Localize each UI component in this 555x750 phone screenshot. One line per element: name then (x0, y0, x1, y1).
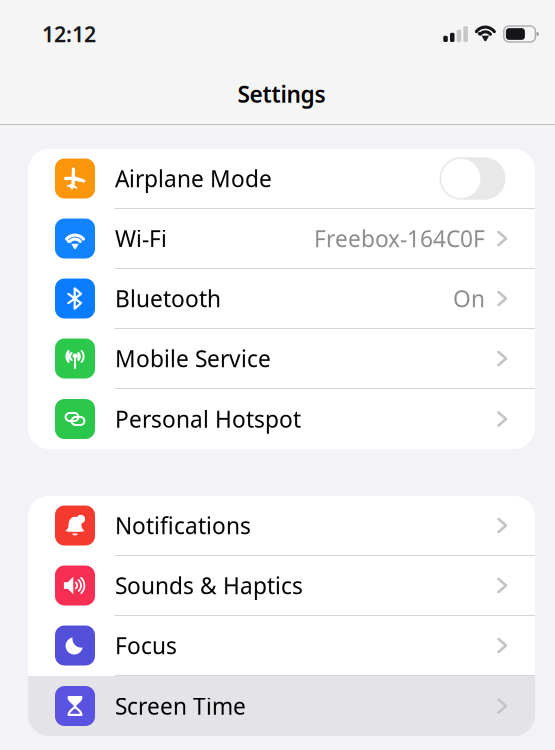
button[interactable]: Wi-Fi (28, 209, 535, 269)
button[interactable]: Personal Hotspot (28, 389, 535, 449)
button[interactable]: Mobile Service (28, 329, 535, 389)
staticText: Bluetooth (115, 283, 221, 313)
button[interactable]: Focus (28, 616, 535, 676)
staticText: Focus (115, 630, 177, 660)
staticText: Sounds & Haptics (115, 570, 303, 600)
staticText: 12:12 (42, 20, 96, 48)
staticText: Airplane Mode (115, 163, 272, 193)
button[interactable]: Bluetooth (28, 269, 535, 329)
staticText: Wi-Fi (115, 223, 167, 253)
staticText: On (453, 283, 485, 313)
button[interactable]: Notifications (28, 496, 535, 556)
staticText: Notifications (115, 510, 251, 540)
staticText: Settings (237, 79, 325, 109)
staticText: Screen Time (115, 691, 246, 721)
button[interactable]: Screen Time (28, 676, 535, 736)
staticText: Mobile Service (115, 343, 271, 373)
button[interactable]: Airplane Mode (28, 149, 535, 209)
button[interactable]: Sounds & Haptics (28, 556, 535, 616)
staticText: Freebox-164C0F (314, 223, 485, 253)
staticText: Personal Hotspot (115, 404, 301, 434)
